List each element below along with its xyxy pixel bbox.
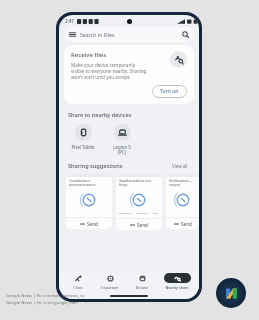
button[interactable]: Send [66, 218, 112, 229]
button[interactable]: Legion 5 (PC) [107, 124, 137, 156]
staticText: Clean [62, 285, 94, 290]
button[interactable]: Turn on [152, 85, 187, 98]
other: Search [182, 31, 189, 38]
button[interactable]: Скачивание и дополнительные отправлено [66, 174, 112, 229]
staticText: 10 дн [152, 211, 159, 214]
staticText: Pixel Tablet [68, 144, 98, 150]
button[interactable]: Send [166, 218, 199, 229]
other: Menu [69, 31, 76, 38]
button[interactable]: Необходимо — получи карте за карту услов… [166, 174, 199, 229]
button[interactable]: Зарабатывай на счёт бонус [116, 174, 162, 230]
staticText: Make your device temporarily visible to … [71, 62, 147, 80]
staticText: Receive files [71, 51, 107, 59]
button[interactable]: Send [116, 219, 162, 230]
staticText: Связаться [136, 211, 148, 214]
staticText: Send [137, 222, 148, 228]
staticText: Google News | En: t.me/google_ewn [6, 300, 78, 306]
staticText: Sharing suggestions [68, 162, 123, 170]
other: Nearby share [170, 51, 187, 68]
staticText: Необходимо — получи карте за карту услов… [169, 179, 196, 187]
button[interactable]: Receive files [64, 45, 194, 104]
button[interactable]: Nearby share [158, 272, 196, 291]
button[interactable]: View all [170, 161, 190, 171]
staticText: Зарабатывай на счёт бонус [119, 179, 159, 187]
button[interactable]: Important [94, 272, 126, 291]
staticText: Legion 5 (PC) [107, 144, 137, 156]
staticText: Browse [126, 285, 158, 290]
button[interactable]: Menu [64, 27, 194, 42]
button[interactable]: Clean [62, 272, 94, 291]
staticText: 2:47 [65, 18, 74, 24]
staticText: Nearby share [158, 285, 196, 290]
staticText: Important [94, 285, 126, 290]
staticText: Share to nearby devices [68, 111, 132, 119]
staticText: Скачивание и дополнительные отправлено [69, 179, 109, 187]
button[interactable]: Pixel Tablet [68, 124, 98, 150]
staticText: Google News | Ru: t.me/googlenews_ru [6, 293, 85, 299]
staticText: Search in Files [80, 31, 115, 38]
staticText: Turn on [160, 88, 179, 95]
staticText: Возможно [119, 211, 132, 214]
staticText: Send [181, 221, 192, 227]
staticText: Send [87, 221, 98, 227]
button[interactable]: Browse [126, 272, 158, 291]
staticText: View all [172, 163, 188, 169]
